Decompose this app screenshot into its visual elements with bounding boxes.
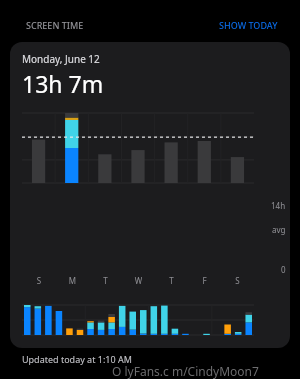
staticText: Monday, June 12: [22, 52, 100, 66]
staticText: Updated today at 1:10 AM: [22, 353, 132, 365]
staticText: 13h 7m: [22, 68, 104, 99]
staticText: 0: [281, 264, 286, 275]
staticText: avg: [272, 224, 286, 235]
staticText: M: [56, 275, 89, 286]
staticText: S: [22, 275, 56, 286]
staticText: T: [89, 275, 122, 286]
staticText: 14h: [271, 200, 286, 211]
staticText: T: [155, 275, 188, 286]
staticText: S: [221, 275, 254, 286]
staticText: W: [122, 275, 155, 286]
button[interactable]: SHOW TODAY: [219, 19, 278, 31]
staticText: F: [188, 275, 221, 286]
staticText: O lyFans.c m/CindyMoon7: [112, 363, 259, 379]
button[interactable]: Monday, June 12: [10, 42, 290, 348]
staticText: SHOW TODAY: [219, 19, 278, 31]
staticText: SCREEN TIME: [26, 19, 84, 31]
